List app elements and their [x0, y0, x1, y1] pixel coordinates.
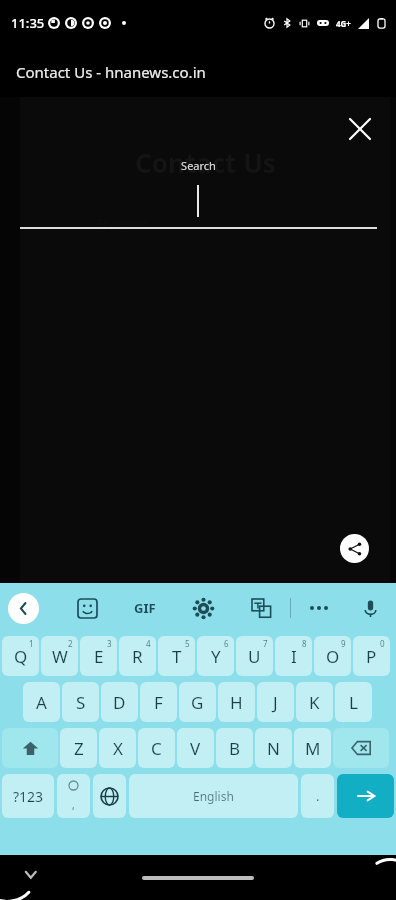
- staticText: 8: [302, 638, 307, 649]
- button[interactable]: Enter: [337, 774, 394, 818]
- staticText: C: [151, 737, 162, 760]
- staticText: W: [52, 645, 68, 668]
- button[interactable]: E: [80, 636, 117, 676]
- button[interactable]: H: [218, 682, 255, 722]
- button[interactable]: Q: [2, 636, 39, 676]
- staticText: 2: [68, 638, 73, 649]
- staticText: L: [349, 691, 358, 714]
- button[interactable]: Y: [197, 636, 234, 676]
- button[interactable]: Stickers: [58, 586, 116, 630]
- button[interactable]: V: [177, 728, 214, 768]
- button[interactable]: D: [101, 682, 138, 722]
- button[interactable]: O: [314, 636, 351, 676]
- button[interactable]: F: [140, 682, 177, 722]
- staticText: Contact Us: [135, 145, 276, 180]
- button[interactable]: Back: [8, 593, 39, 624]
- button[interactable]: X: [99, 728, 136, 768]
- staticText: English: [193, 788, 234, 804]
- staticText: Q: [14, 645, 28, 668]
- button[interactable]: L: [335, 682, 372, 722]
- button[interactable]: Emoji and comma: [57, 774, 90, 818]
- staticText: 1: [29, 638, 34, 649]
- staticText: F: [154, 691, 163, 714]
- staticText: I: [291, 645, 297, 668]
- staticText: 4G+: [336, 18, 351, 29]
- button[interactable]: Recent apps: [348, 855, 396, 900]
- staticText: Reach out: [96, 215, 148, 230]
- staticText: A: [36, 691, 47, 714]
- staticText: 4: [146, 638, 151, 649]
- button[interactable]: W: [41, 636, 78, 676]
- staticText: H: [230, 691, 243, 714]
- button[interactable]: More: [291, 586, 347, 630]
- button[interactable]: GIF: [116, 586, 174, 630]
- staticText: B: [229, 737, 241, 760]
- button[interactable]: Change language: [93, 774, 126, 818]
- button[interactable]: A: [23, 682, 60, 722]
- button[interactable]: N: [255, 728, 292, 768]
- staticText: X: [113, 737, 123, 760]
- staticText: .: [316, 787, 320, 805]
- button[interactable]: Voice input: [347, 586, 393, 630]
- button[interactable]: M: [294, 728, 331, 768]
- staticText: J: [273, 691, 278, 714]
- button[interactable]: S: [62, 682, 99, 722]
- button[interactable]: Backspace: [333, 728, 389, 768]
- button[interactable]: Z: [60, 728, 97, 768]
- button[interactable]: Settings: [174, 586, 232, 630]
- staticText: V: [190, 737, 201, 760]
- button[interactable]: I: [275, 636, 312, 676]
- staticText: 5: [185, 638, 190, 649]
- staticText: 9: [341, 638, 346, 649]
- staticText: GIF: [134, 599, 156, 617]
- button[interactable]: Home: [142, 876, 254, 880]
- button[interactable]: Close search: [342, 111, 378, 147]
- staticText: 3: [107, 638, 112, 649]
- staticText: ?123: [13, 787, 44, 806]
- staticText: M: [305, 737, 321, 760]
- button[interactable]: U: [236, 636, 273, 676]
- staticText: D: [113, 691, 126, 714]
- button[interactable]: Hide keyboard: [0, 855, 56, 900]
- button[interactable]: T: [158, 636, 195, 676]
- button[interactable]: Shift: [2, 728, 58, 768]
- staticText: T: [172, 645, 182, 668]
- staticText: Search: [181, 158, 216, 173]
- staticText: Z: [74, 737, 84, 760]
- staticText: P: [366, 645, 377, 668]
- staticText: 0: [380, 638, 385, 649]
- staticText: U: [248, 645, 261, 668]
- staticText: E: [94, 645, 104, 668]
- button[interactable]: G: [179, 682, 216, 722]
- button[interactable]: Share: [340, 534, 369, 563]
- button[interactable]: B: [216, 728, 253, 768]
- button[interactable]: K: [296, 682, 333, 722]
- staticText: 11:35: [11, 14, 45, 32]
- button[interactable]: J: [257, 682, 294, 722]
- button[interactable]: ?123: [2, 774, 54, 818]
- button[interactable]: Contact Us - hnanews.co.in: [0, 46, 396, 97]
- button[interactable]: P: [353, 636, 390, 676]
- button[interactable]: .: [301, 774, 334, 818]
- staticText: ,: [72, 798, 75, 812]
- staticText: 7: [263, 638, 268, 649]
- staticText: Y: [211, 645, 221, 668]
- button[interactable]: Translate: [232, 586, 290, 630]
- staticText: Contact Us - hnanews.co.in: [16, 62, 206, 82]
- staticText: O: [326, 645, 340, 668]
- button[interactable]: C: [138, 728, 175, 768]
- staticText: K: [309, 691, 320, 714]
- staticText: R: [132, 645, 143, 668]
- button[interactable]: English: [129, 774, 298, 818]
- button[interactable]: R: [119, 636, 156, 676]
- staticText: S: [76, 691, 86, 714]
- staticText: N: [267, 737, 280, 760]
- staticText: G: [191, 691, 204, 714]
- staticText: 6: [224, 638, 229, 649]
